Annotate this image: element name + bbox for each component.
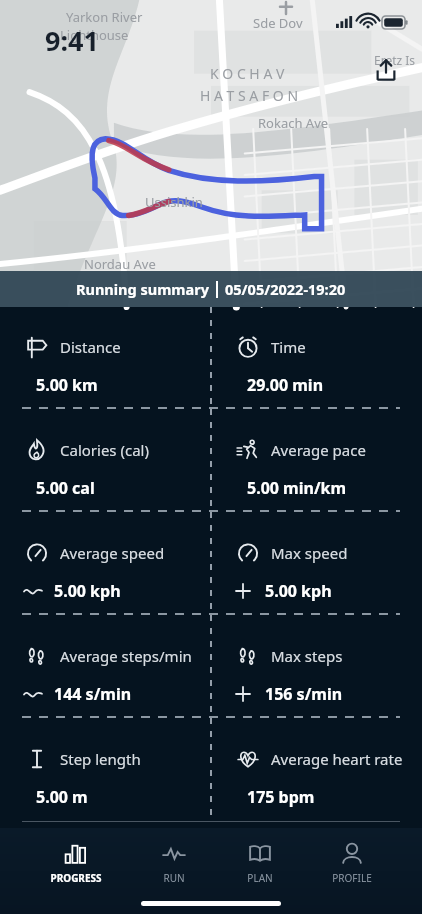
staticText: Distance	[60, 337, 121, 357]
staticText: Max steps	[271, 646, 343, 666]
button[interactable]: Average steps/min	[0, 615, 211, 718]
staticText: 5.00 m	[36, 786, 88, 808]
button[interactable]: Average speed	[0, 512, 211, 615]
button[interactable]: PLAN	[237, 836, 283, 889]
staticText: Time	[271, 337, 306, 357]
button[interactable]: Calories (cal)	[0, 409, 211, 512]
staticText: RUN	[163, 871, 185, 885]
staticText: 05/05/2022-19:20	[225, 279, 346, 299]
button[interactable]: Distance	[0, 307, 211, 409]
staticText: 5.00 kph	[265, 580, 332, 602]
button[interactable]: Share	[370, 54, 402, 86]
staticText: K O C H A V	[210, 64, 285, 83]
staticText: 156 s/min	[265, 683, 343, 705]
staticText: 5.00 kph	[54, 580, 121, 602]
button[interactable]: RUN	[151, 836, 197, 889]
staticText: Average steps/min	[60, 646, 192, 666]
staticText: Step length	[60, 749, 141, 769]
staticText: 9:41	[45, 22, 99, 59]
staticText: Average speed	[60, 543, 165, 563]
staticText: 5.00 cal	[36, 477, 95, 499]
staticText: 175 bpm	[247, 786, 315, 808]
button[interactable]: Running summary	[0, 271, 422, 307]
button[interactable]: Step length	[0, 718, 211, 821]
button[interactable]: Average pace	[211, 409, 422, 512]
staticText: Eretz Is	[374, 52, 416, 68]
staticText: PROFILE	[332, 871, 372, 885]
staticText: Yarkon River	[66, 8, 143, 26]
staticText: H A T S A F O N	[200, 86, 299, 105]
staticText: 5.00 km	[36, 374, 98, 396]
button[interactable]: Max steps	[211, 615, 422, 718]
staticText: Sde Dov	[253, 14, 303, 32]
button[interactable]: Max speed	[211, 512, 422, 615]
staticText: 29.00 min	[247, 374, 324, 396]
button[interactable]: Time	[211, 307, 422, 409]
staticText: Lighthouse	[60, 26, 129, 44]
staticText: 144 s/min	[54, 683, 132, 705]
staticText: Running summary	[76, 279, 209, 299]
staticText: Max speed	[271, 543, 348, 563]
staticText: Average pace	[271, 440, 366, 460]
staticText: Ussishkin	[145, 193, 203, 211]
staticText: PROGRESS	[50, 871, 102, 885]
staticText: Calories (cal)	[60, 440, 149, 460]
staticText: PLAN	[247, 871, 273, 885]
button[interactable]: PROFILE	[322, 836, 382, 889]
button[interactable]: Average heart rate	[211, 718, 422, 821]
button[interactable]: PROGRESS	[40, 836, 112, 889]
staticText: 5.00 min/km	[247, 477, 347, 499]
staticText: Average heart rate	[271, 749, 403, 769]
staticText: Nordau Ave	[84, 255, 156, 273]
staticText: Rokach Ave	[258, 114, 329, 132]
